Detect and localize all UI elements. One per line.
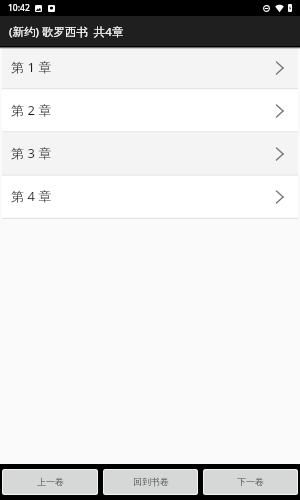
staticText: 下一卷	[237, 476, 264, 487]
staticText: 第 2 章	[11, 101, 52, 119]
button[interactable]: 第 3 章	[2, 132, 298, 175]
staticText: 10:42	[8, 2, 30, 14]
staticText: 回到书卷	[133, 476, 169, 487]
button[interactable]: 第 1 章	[2, 46, 298, 89]
button[interactable]: 第 4 章	[2, 175, 298, 218]
button[interactable]: 下一卷	[204, 470, 297, 494]
button[interactable]: 回到书卷	[104, 470, 197, 494]
staticText: 上一卷	[37, 476, 64, 487]
staticText: 第 3 章	[11, 144, 52, 162]
button[interactable]: 上一卷	[3, 470, 97, 494]
button[interactable]: 第 2 章	[2, 89, 298, 132]
staticText: 第 1 章	[11, 58, 52, 76]
staticText: 第 4 章	[11, 187, 52, 205]
staticText: (新约) 歌罗西书 共4章	[9, 24, 124, 40]
